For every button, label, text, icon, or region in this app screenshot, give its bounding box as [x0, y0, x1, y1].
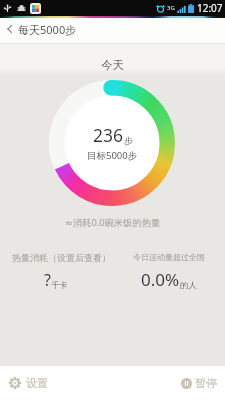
staticText: ? [44, 269, 51, 291]
staticText: 暂停 [195, 376, 217, 390]
staticText: 热量消耗（设置后查看） [12, 252, 111, 263]
staticText: 3G [167, 4, 175, 12]
staticText: 12:07 [197, 1, 223, 15]
button[interactable]: 热量消耗（设置后查看） [0, 250, 112, 293]
button[interactable]: Back [0, 18, 87, 44]
staticText: 设置 [26, 376, 48, 390]
other: Back [5, 24, 15, 34]
staticText: 目标5000步 [87, 149, 138, 162]
staticText: 今天 [101, 58, 124, 72]
staticText: 0.0% [141, 268, 180, 291]
button[interactable]: 今日运动量超过全国 [112, 250, 225, 293]
staticText: 今日运动量超过全国 [133, 252, 205, 262]
staticText: 千卡 [51, 280, 68, 290]
button[interactable]: 暂停 [171, 366, 225, 400]
staticText: 步 [124, 135, 133, 146]
staticText: 236 [93, 123, 124, 147]
staticText: ≈消耗0.0碗米饭的热量 [65, 216, 161, 229]
button[interactable]: 设置 [0, 366, 58, 400]
staticText: 每天5000步 [18, 22, 77, 37]
staticText: 的人 [180, 280, 197, 290]
